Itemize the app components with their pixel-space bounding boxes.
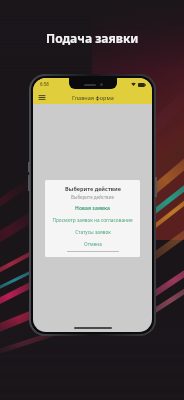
- button[interactable]: Новая заявка: [45, 205, 140, 212]
- staticText: Выберите действие: [65, 185, 121, 192]
- staticText: Просмотр заявок на согласование: [52, 217, 133, 224]
- staticText: Статусы заявок: [75, 229, 111, 236]
- button[interactable]: Просмотр заявок на согласование: [45, 217, 140, 224]
- staticText: Подача заявки: [46, 30, 139, 46]
- button[interactable]: Статусы заявок: [45, 229, 140, 236]
- button[interactable]: Отмена: [45, 241, 140, 248]
- button[interactable]: Меню: [37, 92, 47, 102]
- staticText: 6:58: [40, 81, 49, 87]
- staticText: Выберите действие: [71, 194, 114, 200]
- staticText: Новая заявка: [75, 205, 110, 212]
- staticText: Главная форма: [72, 94, 114, 101]
- staticText: Отмена: [84, 241, 102, 248]
